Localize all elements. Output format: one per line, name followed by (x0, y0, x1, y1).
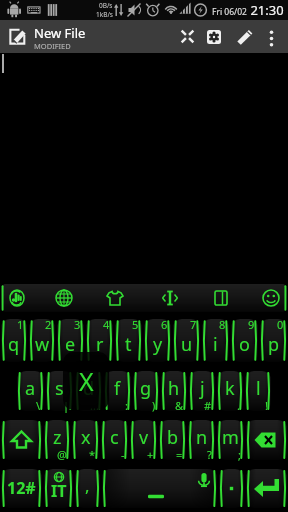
staticText: - (121, 447, 125, 462)
staticText: 7 (190, 317, 197, 332)
button[interactable]: l (244, 367, 272, 416)
staticText: 12# (7, 477, 36, 499)
button[interactable]: Theme (100, 283, 130, 312)
staticText: 2 (45, 317, 52, 332)
staticText: o (239, 332, 250, 357)
button[interactable] (101, 465, 218, 512)
staticText: w (35, 332, 50, 357)
button[interactable]: y (143, 316, 172, 367)
button[interactable]: New file (4, 20, 31, 53)
staticText: v (139, 425, 149, 450)
button[interactable]: , (74, 465, 101, 512)
button[interactable]: c (100, 416, 129, 465)
staticText: @ (57, 447, 67, 462)
staticText: h (168, 376, 180, 401)
button[interactable]: f (103, 367, 132, 416)
button[interactable]: p (259, 316, 288, 367)
staticText: 0B/s (99, 1, 113, 10)
button[interactable]: u (172, 316, 201, 367)
staticText: Fri 06/02 (212, 6, 247, 18)
staticText: y (153, 332, 163, 357)
staticText: & (175, 398, 184, 413)
button[interactable]: i (201, 316, 230, 367)
button[interactable]: m (216, 416, 245, 465)
staticText: 21:30 (247, 1, 284, 19)
button[interactable]: x (71, 416, 100, 465)
staticText: 3 (74, 317, 81, 332)
staticText: X (79, 364, 94, 398)
staticText: IT (51, 480, 67, 502)
staticText: m (222, 425, 239, 450)
staticText: # (204, 398, 212, 413)
button[interactable]: Language (49, 283, 79, 312)
staticText: e (65, 332, 76, 357)
staticText: 9 (248, 317, 255, 332)
button[interactable]: Settings (200, 20, 228, 53)
button[interactable]: Edit (231, 20, 259, 53)
staticText: 1kB/s (96, 10, 113, 19)
button[interactable]: t (114, 316, 143, 367)
staticText: 4 (103, 317, 110, 332)
staticText: g (140, 376, 152, 401)
button[interactable]: b (158, 416, 187, 465)
button[interactable]: a (16, 367, 45, 416)
staticText: s (55, 376, 64, 401)
button[interactable]: 12# (0, 465, 43, 512)
button[interactable]: IT (43, 465, 74, 512)
staticText: p (268, 332, 280, 357)
staticText: ) (152, 398, 156, 413)
button[interactable]: Fullscreen (173, 20, 201, 53)
staticText: b (167, 425, 179, 450)
staticText: * (89, 447, 96, 462)
button[interactable]: Emoji (256, 283, 286, 312)
button[interactable]: d (74, 367, 103, 416)
staticText: a (25, 376, 36, 401)
staticText: MODIFIED (34, 41, 71, 51)
button[interactable]: o (230, 316, 259, 367)
button[interactable]: Clipboard (206, 283, 236, 312)
button[interactable]: q (0, 316, 28, 367)
staticText: l (256, 376, 261, 401)
staticText: . (237, 398, 240, 413)
button[interactable]: n (187, 416, 216, 465)
staticText: r (96, 332, 104, 357)
button[interactable]: Voice input (2, 283, 32, 312)
staticText: , (85, 474, 90, 497)
staticText: ; (238, 447, 241, 462)
staticText: c (110, 425, 119, 450)
staticText: n (196, 425, 208, 450)
button[interactable]: j (188, 367, 216, 416)
button[interactable]: h (160, 367, 188, 416)
button[interactable]: s (45, 367, 74, 416)
staticText: 8 (219, 317, 226, 332)
button[interactable]: Cursor control (155, 283, 185, 312)
button[interactable]: w (28, 316, 56, 367)
staticText: i (213, 332, 218, 357)
staticText: j (200, 376, 205, 401)
staticText: : (125, 398, 128, 413)
staticText: f (114, 376, 121, 401)
button[interactable]: k (216, 367, 244, 416)
staticText: k (225, 376, 235, 401)
staticText: | (63, 398, 70, 413)
button[interactable] (218, 465, 245, 512)
staticText: + (147, 447, 154, 462)
button[interactable]: e (56, 316, 85, 367)
button[interactable]: v (129, 416, 158, 465)
button[interactable]: r (85, 316, 114, 367)
staticText: d (83, 376, 95, 401)
staticText: q (8, 332, 20, 357)
staticText: ... (90, 398, 99, 413)
staticText: 0 (277, 317, 284, 332)
staticText: ! (265, 398, 268, 413)
button[interactable]: g (132, 367, 160, 416)
staticText: t (125, 332, 132, 357)
button[interactable]: Enter (245, 465, 288, 512)
button[interactable]: More options (258, 20, 284, 53)
staticText: 6 (161, 317, 168, 332)
staticText: 5 (132, 317, 139, 332)
button[interactable]: z (43, 416, 71, 465)
button[interactable]: Backspace (245, 416, 288, 465)
button[interactable]: Shift (0, 416, 43, 465)
staticText: x (81, 425, 91, 450)
